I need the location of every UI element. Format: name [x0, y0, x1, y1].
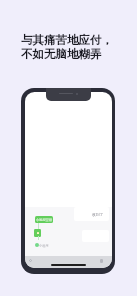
button[interactable]	[34, 229, 41, 237]
button[interactable]: Voice input	[29, 259, 32, 262]
staticText: 收到了	[92, 212, 104, 217]
button[interactable]: 收到了	[74, 207, 109, 221]
staticText: 小程序	[39, 244, 49, 248]
button[interactable]: Microphone	[100, 259, 103, 263]
staticText: 与其痛苦地应付，	[21, 33, 113, 47]
staticText: 不如无脑地糊弄	[21, 47, 102, 61]
staticText: 今晚有空聊	[36, 218, 52, 222]
button[interactable]: 今晚有空聊	[35, 216, 53, 223]
